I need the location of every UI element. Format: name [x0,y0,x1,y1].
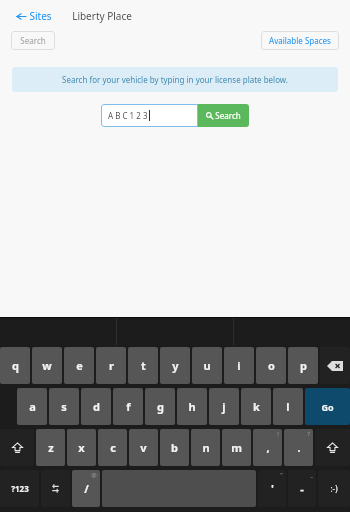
staticText: Go [321,401,334,413]
staticText: i [237,358,241,373]
button[interactable]: g [145,388,175,425]
button[interactable]: n [191,429,220,466]
staticText: f [126,399,131,414]
staticText: Search [215,110,241,121]
staticText: r [109,358,114,373]
staticText: @ [91,471,97,479]
staticText: w [42,358,52,373]
staticText: Liberty Place [72,9,132,23]
staticText: , [266,440,270,455]
button[interactable]: Available Spaces [261,31,339,50]
staticText: e [76,358,83,373]
button[interactable]: Sites [14,5,55,27]
staticText: o [268,358,275,373]
staticText: z [48,440,54,455]
button[interactable]: ? [284,429,313,466]
staticText: ? [307,430,310,438]
staticText: A B C 1 2 3 [108,110,148,121]
staticText: c [110,440,116,455]
button[interactable]: _ [288,470,316,507]
button[interactable]: A B C 1 2 3 [101,104,198,127]
button[interactable]: i [224,347,254,384]
staticText: u [203,358,211,373]
button[interactable]: " [258,470,286,507]
button[interactable]: ?123 [0,470,39,507]
button[interactable]: Backspace [320,347,350,384]
staticText: - [300,481,304,496]
button[interactable]: Input settings [41,470,70,507]
button[interactable]: w [32,347,62,384]
staticText: k [253,399,260,414]
button[interactable]: Go [305,388,350,425]
button[interactable]: Shift [315,429,350,466]
button[interactable]: f [113,388,143,425]
staticText: Available Spaces [269,35,331,46]
button[interactable]: l [273,388,303,425]
staticText: n [202,440,210,455]
staticText: Sites [29,9,52,23]
button[interactable]: c [98,429,127,466]
staticText: p [300,358,307,373]
staticText: x [78,440,85,455]
button[interactable]: p [288,347,318,384]
button[interactable]: e [64,347,94,384]
button[interactable]: u [192,347,222,384]
button[interactable]: m [222,429,251,466]
button[interactable]: y [160,347,190,384]
button[interactable]: :-) [318,470,350,507]
button[interactable]: x [67,429,96,466]
staticText: l [286,399,290,414]
staticText: ?123 [11,483,29,494]
staticText: q [12,358,19,373]
button[interactable]: Search [198,104,249,127]
staticText: m [231,440,242,455]
button[interactable]: h [177,388,207,425]
staticText: s [61,399,67,414]
button[interactable]: b [160,429,189,466]
staticText: h [188,399,196,414]
button[interactable]: t [128,347,158,384]
staticText: d [93,399,100,414]
button[interactable]: a [17,388,47,425]
button[interactable]: j [209,388,239,425]
button[interactable]: k [241,388,271,425]
button[interactable]: q [0,347,30,384]
staticText: _ [310,471,313,479]
staticText: :-) [330,483,338,494]
staticText: . [297,440,301,455]
button[interactable]: r [96,347,126,384]
button[interactable]: z [36,429,65,466]
button[interactable]: s [49,388,79,425]
staticText: Search [20,35,46,46]
button[interactable]: @ [72,470,100,507]
staticText: ' [271,481,274,496]
staticText: b [171,440,178,455]
button[interactable]: o [256,347,286,384]
button[interactable]: ! [253,429,282,466]
staticText: ! [277,430,279,438]
staticText: t [141,358,146,373]
button[interactable]: Shift [0,429,34,466]
staticText: v [140,440,147,455]
staticText: a [29,399,36,414]
staticText: y [172,358,179,373]
staticText: g [157,399,164,414]
button[interactable]: Search [11,31,55,50]
button[interactable]: d [81,388,111,425]
button[interactable]: v [129,429,158,466]
staticText: j [222,399,226,414]
staticText: " [280,471,283,479]
staticText: / [84,481,89,496]
staticText: Search for your vehicle by typing in you… [62,74,288,85]
